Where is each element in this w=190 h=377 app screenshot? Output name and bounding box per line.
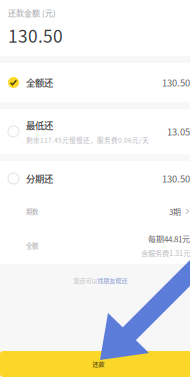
- button[interactable]: 还款: [0, 351, 190, 377]
- staticText: 还款金额 (元): [8, 7, 56, 19]
- button[interactable]: 找朋友帮还: [97, 276, 127, 285]
- staticText: 130.50: [162, 76, 190, 89]
- staticText: 最低还: [26, 118, 53, 132]
- staticText: 每期44.81元: [148, 233, 190, 244]
- staticText: 130.50: [162, 172, 190, 185]
- staticText: 全额: [26, 241, 38, 250]
- staticText: 3期: [169, 206, 181, 217]
- staticText: 找朋友帮还: [97, 276, 127, 285]
- staticText: 还款: [92, 360, 104, 368]
- button[interactable]: 期数: [0, 196, 190, 227]
- button[interactable]: 分期还: [0, 161, 190, 196]
- staticText: 含服务费1.31元: [141, 247, 190, 258]
- button[interactable]: 最低还: [0, 109, 190, 154]
- button[interactable]: 全额还: [0, 63, 190, 102]
- button[interactable]: 全额: [0, 227, 190, 264]
- staticText: 分期还: [26, 172, 53, 185]
- staticText: 全额还: [26, 76, 53, 89]
- staticText: 您还可以: [73, 276, 97, 285]
- staticText: 13.05: [167, 125, 190, 138]
- staticText: 剩余117.45元慢慢还，服务费0.06元/天: [26, 135, 149, 145]
- staticText: 期数: [26, 207, 38, 216]
- staticText: 130.50: [8, 23, 63, 48]
